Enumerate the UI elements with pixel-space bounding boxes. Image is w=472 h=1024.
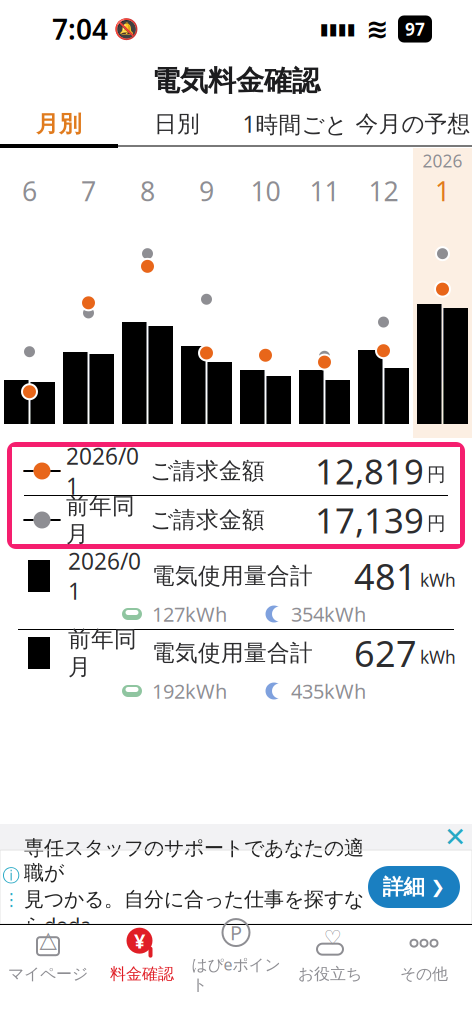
staticText: 127kWh [152,601,227,627]
button[interactable]: △ [1,925,95,987]
button[interactable]: 2026/01 [12,447,460,495]
staticText: 電気使用量合計 [152,562,313,590]
staticText: 481 [354,552,417,600]
staticText: 料金確認 [110,964,174,984]
staticText: △ [39,926,56,952]
staticText: 8 [140,173,155,209]
staticText: はぴeポイント [191,953,280,994]
staticText: kWh [420,645,456,668]
button[interactable]: その他 [377,925,471,987]
button[interactable]: ⓘ [0,850,472,924]
staticText: 前年同月 [68,625,137,681]
staticText: 354kWh [291,601,366,627]
button[interactable]: P [189,925,283,987]
staticText: ⋮ [2,889,19,909]
button[interactable]: ¥ [95,925,189,987]
button[interactable]: 前年同月 [0,629,472,706]
staticText: その他 [400,964,448,984]
button[interactable]: 月別 [0,104,118,144]
staticText: P [230,919,242,946]
staticText: 6 [22,173,37,209]
staticText: ¥ [134,927,145,954]
staticText: 11 [309,173,339,209]
staticText: マイページ [8,964,88,984]
staticText: 9 [199,173,214,209]
staticText: ご請求金額 [150,457,265,485]
staticText: 専任スタッフのサポートであなたの適職が [24,836,364,885]
button[interactable]: 日別 [118,104,236,144]
staticText: 🔕 [114,18,139,40]
staticText: 月別 [36,110,82,138]
button[interactable]: ♡ [283,925,377,987]
staticText: ⓘ [2,865,19,886]
button[interactable]: 広告を閉じる [438,824,472,850]
staticText: 7 [81,173,96,209]
staticText: 627 [354,629,417,677]
staticText: 見つかる。自分に合った仕事を探すならdoda [24,887,364,938]
staticText: 10 [250,173,280,209]
staticText: ✕ [444,822,466,852]
staticText: 2026 [422,149,462,172]
staticText: 前年同月 [66,492,135,548]
staticText: 12,819 [315,448,424,494]
staticText: 192kWh [152,678,227,704]
staticText: ご請求金額 [150,506,265,534]
button[interactable]: 今月の予想 [354,104,472,144]
staticText: 12 [368,173,398,209]
staticText: 2026/01 [68,546,141,606]
staticText: 今月の予想 [355,110,470,138]
staticText: 7:04 [52,10,108,48]
staticText: ▮▮▮▮ [320,20,356,38]
staticText: 電気料金確認 [152,64,320,98]
staticText: 435kWh [291,678,366,704]
staticText: 円 [427,463,446,486]
staticText: 97 [405,17,425,40]
staticText: 17,139 [315,497,424,543]
staticText: 1時間ごと [242,109,347,139]
button[interactable]: 前年同月 [12,496,460,544]
staticText: 電気使用量合計 [152,639,313,667]
button[interactable]: 2026/01 [0,553,472,629]
staticText: 円 [427,512,446,535]
staticText: ≋ [366,14,388,44]
staticText: 2026/01 [66,441,139,501]
staticText: 詳細 [382,874,424,900]
button[interactable]: 1時間ごと [236,104,354,144]
staticText: お役立ち [298,964,362,984]
staticText: ♡ [323,926,341,949]
staticText: 1 [435,173,450,209]
staticText: ❯ [430,877,445,897]
staticText: 日別 [154,110,200,138]
staticText: kWh [420,568,456,591]
